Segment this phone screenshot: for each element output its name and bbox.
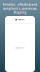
staticText: Reliable, effortless and (2, 3, 37, 6)
staticText: shipfast (18, 19, 25, 21)
staticText: shipping (13, 11, 26, 14)
staticText: compliant e-commerce (3, 7, 37, 10)
staticText: Ship smarter (15, 47, 25, 49)
